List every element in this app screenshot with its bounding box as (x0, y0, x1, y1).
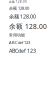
staticText: ABCdef 123 (9, 47, 36, 54)
staticText: 常用功能 (9, 33, 25, 38)
staticText: 余额 128.00 (9, 5, 29, 11)
staticText: ABCdef 123 (9, 40, 30, 45)
staticText: 余额 128.00 (9, 22, 47, 31)
staticText: 余额 128.00 (9, 13, 36, 20)
staticText: 余额 128.00 (9, 0, 27, 3)
